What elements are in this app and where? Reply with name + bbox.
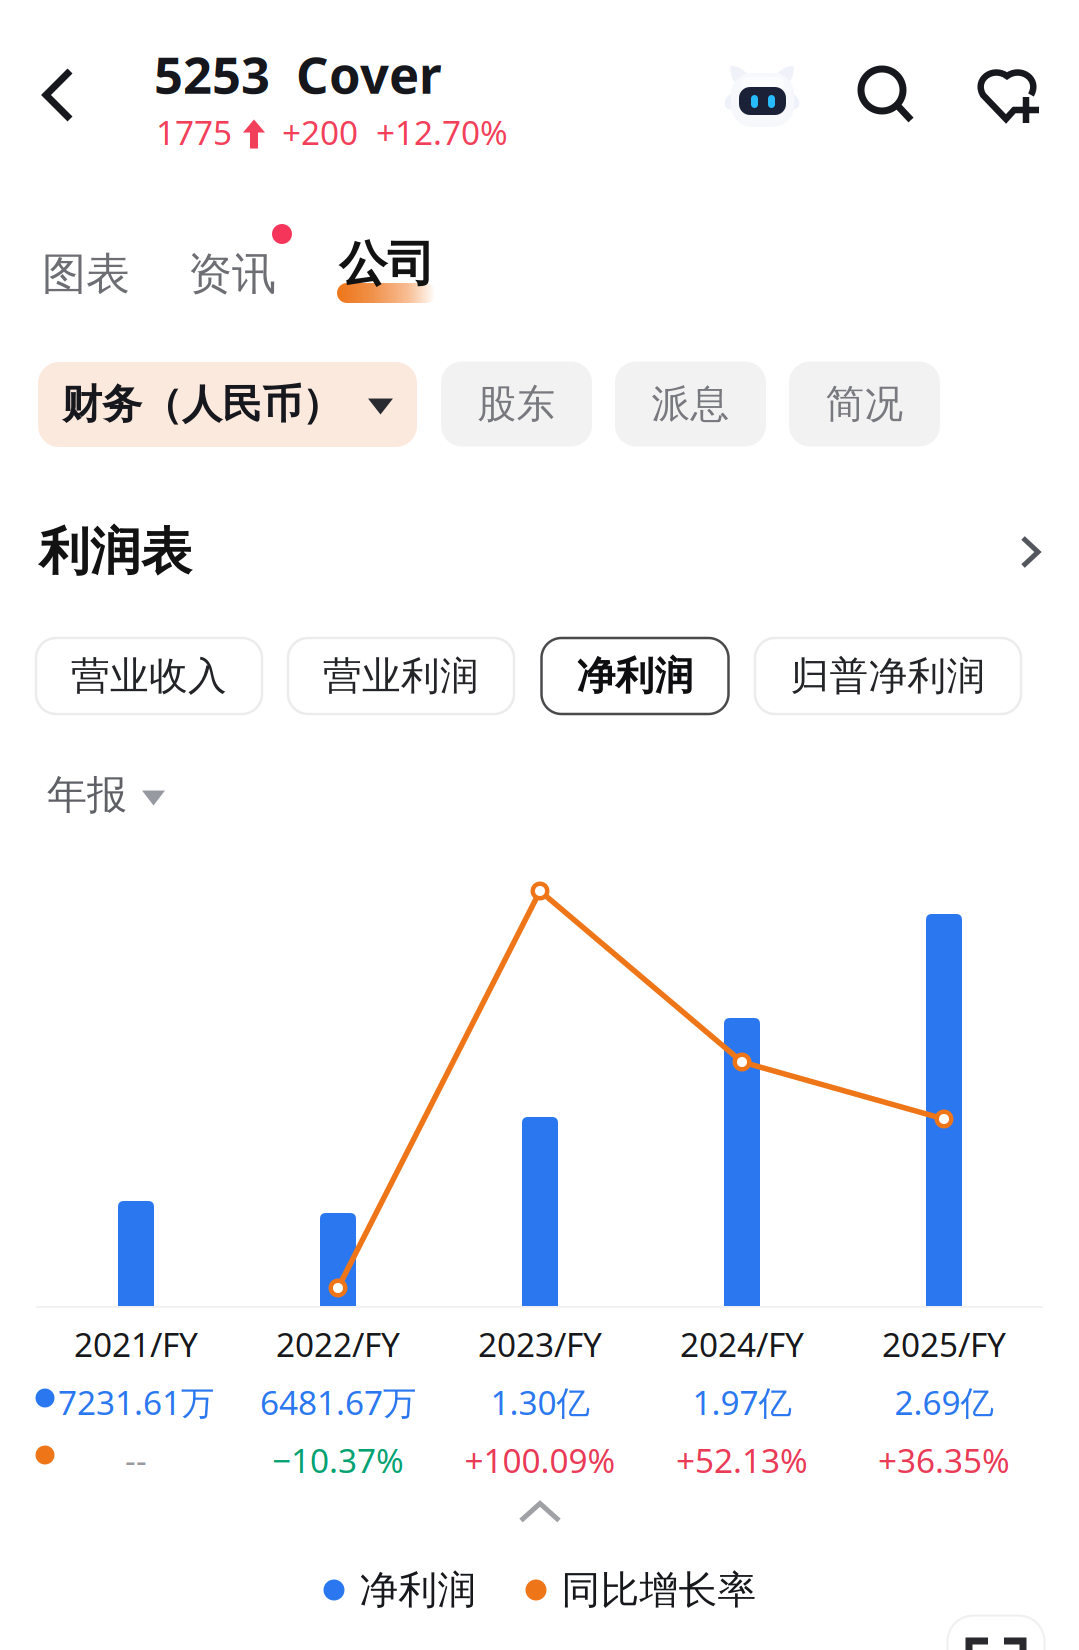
staticText: +36.35% bbox=[878, 1438, 1010, 1482]
staticText: 2023/FY bbox=[478, 1322, 602, 1366]
button[interactable]: 年报 bbox=[31, 764, 181, 826]
button[interactable]: Fullscreen bbox=[947, 1615, 1044, 1650]
button[interactable]: 归普净利润 bbox=[755, 638, 1021, 714]
button[interactable]: 净利润 bbox=[541, 638, 728, 714]
staticText: 资讯 bbox=[188, 247, 276, 301]
staticText: 6481.67万 bbox=[260, 1380, 416, 1424]
staticText: 2024/FY bbox=[680, 1322, 804, 1366]
button[interactable]: 利润表 bbox=[39, 516, 1041, 588]
button[interactable]: AI assistant bbox=[721, 59, 803, 129]
button[interactable]: 简况 bbox=[789, 361, 940, 446]
button[interactable]: 资讯 bbox=[177, 239, 287, 309]
staticText: 公司 bbox=[339, 234, 435, 293]
button[interactable]: Add to watchlist bbox=[974, 65, 1042, 125]
button[interactable]: 派息 bbox=[615, 361, 766, 446]
button[interactable]: Search bbox=[857, 66, 915, 124]
staticText: 7231.61万 bbox=[58, 1380, 214, 1424]
button[interactable]: Collapse bbox=[492, 1481, 588, 1543]
button[interactable]: 股东 bbox=[441, 361, 592, 446]
staticText: 2021/FY bbox=[74, 1322, 198, 1366]
staticText: 净利润 bbox=[576, 652, 693, 700]
button[interactable]: Back bbox=[8, 40, 108, 150]
staticText: 年报 bbox=[47, 770, 127, 819]
button[interactable]: 图表 bbox=[31, 239, 141, 309]
staticText: 财务（人民币） bbox=[62, 380, 342, 429]
staticText: 1.97亿 bbox=[692, 1380, 791, 1424]
staticText: +100.09% bbox=[464, 1438, 615, 1482]
staticText: 5253 Cover bbox=[154, 40, 442, 108]
button[interactable]: 营业利润 bbox=[288, 638, 514, 714]
staticText: 图表 bbox=[42, 247, 130, 301]
staticText: +52.13% bbox=[676, 1438, 808, 1482]
staticText: 派息 bbox=[651, 380, 729, 428]
staticText: 同比增长率 bbox=[561, 1566, 756, 1614]
staticText: −10.37% bbox=[272, 1438, 404, 1482]
staticText: 2025/FY bbox=[882, 1322, 1006, 1366]
button[interactable]: 营业收入 bbox=[36, 638, 262, 714]
staticText: 利润表 bbox=[39, 521, 192, 583]
staticText: 简况 bbox=[825, 380, 903, 428]
staticText: 营业利润 bbox=[323, 652, 479, 700]
staticText: 净利润 bbox=[359, 1566, 476, 1614]
button[interactable]: 财务（人民币） bbox=[38, 362, 417, 447]
button[interactable]: 公司 bbox=[335, 236, 439, 312]
staticText: 股东 bbox=[477, 380, 555, 428]
staticText: 归普净利润 bbox=[790, 652, 985, 700]
staticText: 2022/FY bbox=[276, 1322, 400, 1366]
staticText: 1.30亿 bbox=[490, 1380, 589, 1424]
staticText: +200 bbox=[282, 110, 358, 154]
staticText: 2.69亿 bbox=[894, 1380, 993, 1424]
staticText: +12.70% bbox=[376, 110, 508, 154]
staticText: 营业收入 bbox=[71, 652, 227, 700]
staticText: 1775 bbox=[156, 110, 232, 154]
staticText: -- bbox=[125, 1438, 147, 1482]
